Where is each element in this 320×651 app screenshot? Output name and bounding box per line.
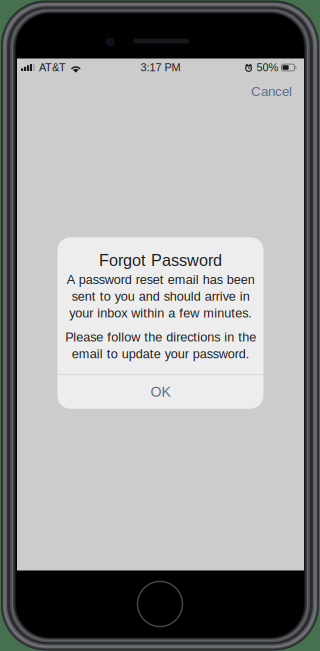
staticText: Please follow the directions in the emai… xyxy=(65,330,256,361)
staticText: A password reset email has been sent to … xyxy=(66,272,254,320)
button[interactable]: Cancel xyxy=(243,76,300,107)
staticText: 50% xyxy=(256,61,278,74)
staticText: AT&T xyxy=(39,61,66,74)
staticText: Forgot Password xyxy=(99,251,222,269)
button[interactable]: OK xyxy=(57,375,263,409)
staticText: 3:17 PM xyxy=(140,61,180,74)
staticText: Cancel xyxy=(251,84,292,99)
staticText: OK xyxy=(150,384,170,400)
